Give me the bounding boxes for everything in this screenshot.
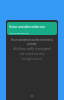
staticText: and routed securely xyxy=(19,52,45,56)
staticText: Your connection to the internet is priva… xyxy=(8,38,56,46)
staticText: All of your traffic is encrypted xyxy=(13,47,51,51)
staticText: Tap to disconnect xyxy=(9,31,29,34)
staticText: Secure connection active now xyxy=(9,25,45,29)
button[interactable]: Secure connection active now xyxy=(7,22,57,35)
staticText: through a server xyxy=(21,57,43,61)
